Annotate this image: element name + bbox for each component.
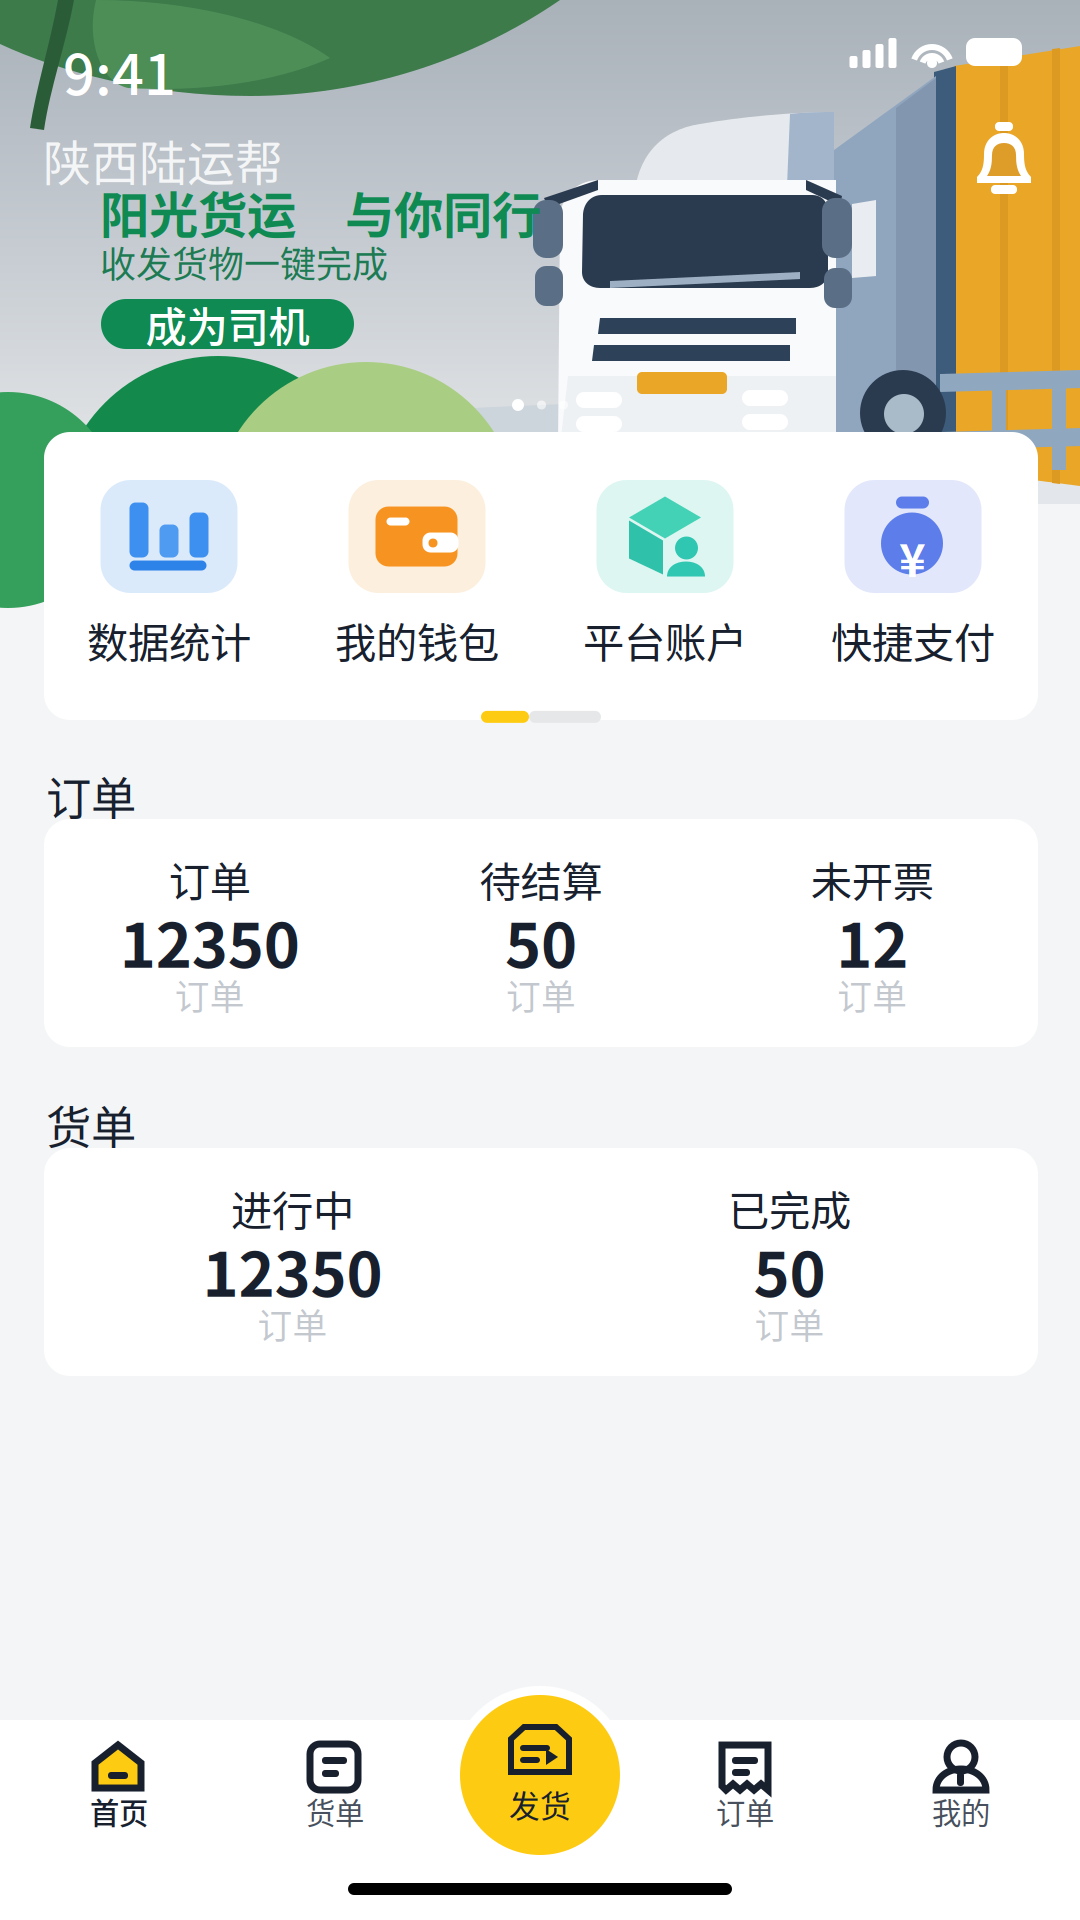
staticText: 50 — [753, 1226, 825, 1314]
staticText: 订单 — [169, 849, 251, 909]
staticText: ¥ — [899, 524, 926, 590]
staticText: 订单 — [837, 970, 907, 1020]
staticText: 快捷支付 — [831, 610, 995, 670]
button[interactable]: 我的 — [853, 1741, 1069, 1832]
staticText: 首页 — [90, 1790, 148, 1832]
staticText: 订单 — [716, 1790, 774, 1832]
button[interactable]: 成为司机 — [101, 299, 354, 349]
button[interactable]: 通知 — [972, 122, 1036, 194]
staticText: 成为司机 — [145, 294, 309, 354]
staticText: 阳光货运 与你同行 — [100, 176, 541, 247]
staticText: 我的 — [932, 1790, 990, 1832]
staticText: 待结算 — [479, 849, 602, 909]
button[interactable]: 数据统计 — [45, 480, 293, 670]
staticText: 平台账户 — [583, 610, 747, 670]
button[interactable]: 订单 — [637, 1741, 853, 1832]
staticText: 订单 — [506, 970, 576, 1020]
button[interactable]: 订单 — [44, 848, 375, 1018]
button[interactable]: 首页 — [11, 1741, 227, 1832]
button[interactable]: 待结算 — [375, 848, 707, 1018]
staticText: 订单 — [175, 970, 245, 1020]
button[interactable]: ¥ — [789, 480, 1037, 670]
button[interactable]: 已完成 — [541, 1177, 1038, 1347]
staticText: 已完成 — [728, 1178, 851, 1238]
staticText: 订单 — [257, 1299, 327, 1349]
button[interactable]: 进行中 — [44, 1177, 541, 1347]
staticText: 货单 — [306, 1790, 364, 1832]
button[interactable]: 发货 — [460, 1695, 620, 1855]
staticText: 收发货物一键完成 — [100, 236, 388, 288]
staticText: 订单 — [754, 1299, 824, 1349]
staticText: 9:41 — [63, 30, 176, 111]
staticText: 50 — [505, 897, 577, 985]
staticText: 数据统计 — [87, 610, 251, 670]
staticText: 订单 — [46, 763, 136, 829]
staticText: 12350 — [120, 897, 300, 985]
staticText: 陕西陆运帮 — [43, 125, 283, 194]
button[interactable]: 平台账户 — [541, 480, 789, 670]
staticText: 12 — [836, 897, 908, 985]
staticText: 进行中 — [231, 1178, 354, 1238]
button[interactable]: 未开票 — [707, 848, 1038, 1018]
staticText: 12350 — [202, 1226, 382, 1314]
button[interactable]: 我的钱包 — [293, 480, 541, 670]
staticText: 货单 — [46, 1092, 136, 1158]
staticText: 我的钱包 — [335, 610, 499, 670]
button[interactable]: 货单 — [227, 1741, 443, 1832]
staticText: 发货 — [509, 1782, 571, 1826]
staticText: 未开票 — [811, 849, 934, 909]
